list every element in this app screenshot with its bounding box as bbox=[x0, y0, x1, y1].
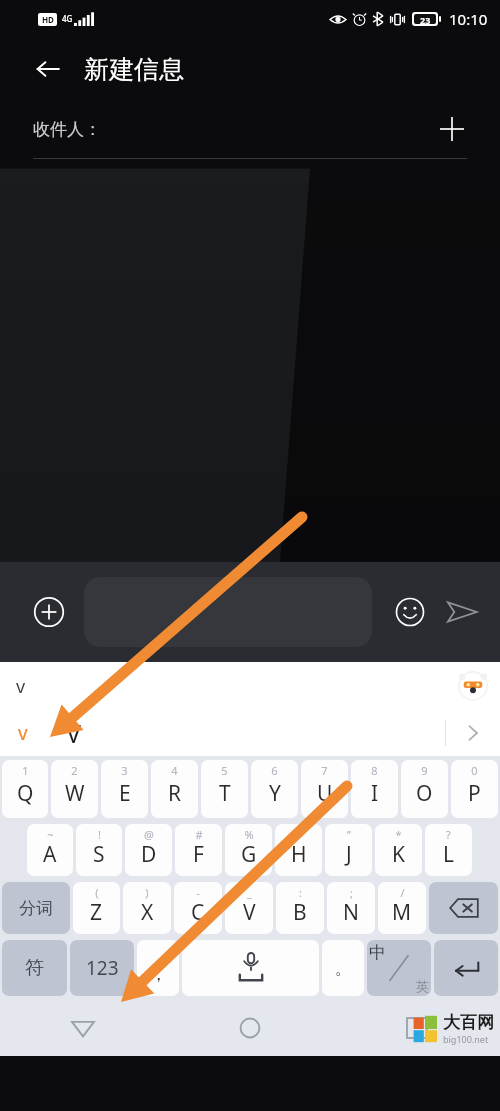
button[interactable]: ” bbox=[325, 824, 372, 876]
button[interactable]: 返回 bbox=[26, 47, 70, 91]
staticText: 符 bbox=[25, 956, 44, 980]
staticText: v bbox=[18, 720, 28, 746]
button[interactable]: ~ bbox=[27, 824, 73, 876]
button[interactable]: 1 bbox=[2, 760, 48, 818]
staticText: 23 bbox=[420, 14, 431, 24]
button[interactable]: 。 bbox=[322, 940, 364, 996]
staticText: W bbox=[65, 779, 85, 808]
button[interactable]: @ bbox=[125, 824, 172, 876]
staticText: # bbox=[195, 827, 203, 842]
button[interactable]: ) bbox=[123, 882, 171, 934]
staticText: 4G bbox=[62, 13, 73, 24]
staticText: I bbox=[371, 779, 379, 808]
button[interactable]: 分词 bbox=[2, 882, 70, 934]
staticText: 2 bbox=[71, 763, 78, 778]
staticText: ( bbox=[95, 885, 99, 900]
button[interactable]: / bbox=[378, 882, 426, 934]
staticText: U bbox=[317, 779, 333, 808]
staticText: 收件人： bbox=[33, 119, 101, 140]
staticText: * bbox=[395, 827, 402, 842]
button[interactable]: 0 bbox=[451, 760, 498, 818]
staticText: T bbox=[219, 779, 231, 808]
button[interactable]: 8 bbox=[351, 760, 398, 818]
staticText: - bbox=[196, 885, 200, 900]
staticText: 6 bbox=[271, 763, 278, 778]
staticText: 1 bbox=[22, 763, 29, 778]
staticText: v bbox=[16, 674, 26, 699]
button[interactable]: 4 bbox=[151, 760, 198, 818]
button[interactable]: ， bbox=[137, 940, 179, 996]
button[interactable]: 回车 bbox=[434, 940, 498, 996]
button[interactable]: 输入法图标 bbox=[458, 671, 488, 701]
staticText: 大百网 bbox=[443, 1012, 494, 1033]
button[interactable] bbox=[84, 577, 372, 647]
button[interactable]: : bbox=[276, 882, 324, 934]
staticText: ” bbox=[347, 827, 351, 842]
button[interactable]: ! bbox=[76, 824, 122, 876]
staticText: K bbox=[392, 840, 405, 869]
button[interactable]: # bbox=[175, 824, 222, 876]
button[interactable]: 主屏幕 bbox=[166, 1000, 333, 1056]
button[interactable]: * bbox=[375, 824, 422, 876]
staticText: ， bbox=[150, 964, 167, 985]
button[interactable]: V bbox=[46, 710, 102, 756]
button[interactable]: % bbox=[225, 824, 272, 876]
staticText: G bbox=[241, 840, 257, 869]
button[interactable]: 6 bbox=[251, 760, 298, 818]
button[interactable]: ( bbox=[73, 882, 120, 934]
staticText: P bbox=[468, 779, 481, 808]
staticText: @ bbox=[144, 827, 154, 842]
staticText: 新建信息 bbox=[84, 54, 184, 85]
button[interactable]: v bbox=[0, 710, 46, 756]
staticText: F bbox=[193, 840, 204, 869]
staticText: N bbox=[343, 898, 359, 927]
button[interactable]: 2 bbox=[51, 760, 98, 818]
button[interactable]: _ bbox=[225, 882, 273, 934]
button[interactable]: 中英文切换 bbox=[367, 940, 431, 996]
button[interactable]: - bbox=[174, 882, 222, 934]
staticText: R bbox=[168, 779, 182, 808]
button[interactable]: 表情 bbox=[388, 590, 432, 634]
button[interactable]: “ bbox=[275, 824, 322, 876]
button[interactable]: 添加附件 bbox=[26, 589, 72, 635]
button[interactable]: 3 bbox=[101, 760, 148, 818]
button[interactable]: 添加联系人 bbox=[430, 107, 474, 151]
staticText: S bbox=[93, 840, 105, 869]
button[interactable]: 5 bbox=[201, 760, 248, 818]
staticText: % bbox=[244, 827, 254, 842]
button[interactable]: 发送 bbox=[438, 588, 486, 636]
staticText: / bbox=[400, 885, 405, 900]
staticText: 8 bbox=[371, 763, 378, 778]
staticText: ) bbox=[145, 885, 149, 900]
button[interactable]: 符 bbox=[2, 940, 67, 996]
button[interactable]: ; bbox=[327, 882, 375, 934]
staticText: E bbox=[119, 779, 131, 808]
staticText: 10:10 bbox=[449, 9, 488, 29]
staticText: 分词 bbox=[19, 898, 53, 919]
button[interactable]: 7 bbox=[301, 760, 348, 818]
button[interactable]: 9 bbox=[401, 760, 448, 818]
button[interactable]: 更多候选 bbox=[446, 710, 500, 756]
button[interactable]: 删除 bbox=[429, 882, 498, 934]
staticText: C bbox=[191, 898, 205, 927]
staticText: HD bbox=[42, 14, 54, 25]
staticText: A bbox=[43, 840, 57, 869]
staticText: 9 bbox=[421, 763, 428, 778]
staticText: Q bbox=[17, 779, 34, 808]
staticText: 。 bbox=[335, 958, 352, 979]
staticText: : bbox=[299, 885, 302, 900]
button[interactable]: 返回 bbox=[0, 1000, 166, 1056]
staticText: Y bbox=[269, 779, 281, 808]
staticText: 中 bbox=[369, 942, 386, 963]
staticText: L bbox=[443, 840, 455, 869]
staticText: 7 bbox=[321, 763, 328, 778]
button[interactable]: 空格 bbox=[182, 940, 319, 996]
staticText: 4 bbox=[171, 763, 178, 778]
button[interactable]: 123 bbox=[70, 940, 134, 996]
staticText: _ bbox=[247, 885, 252, 900]
staticText: V bbox=[66, 716, 82, 750]
button[interactable]: ? bbox=[425, 824, 472, 876]
button[interactable]: 最近任务 bbox=[333, 1000, 500, 1056]
staticText: Z bbox=[90, 898, 103, 927]
staticText: O bbox=[416, 779, 433, 808]
